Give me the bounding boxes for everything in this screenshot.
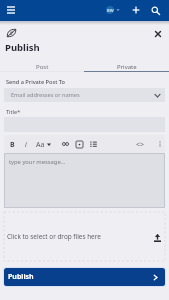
button[interactable]: Aa xyxy=(36,140,45,150)
button[interactable]: Menu xyxy=(5,4,17,16)
button[interactable]: Add xyxy=(130,4,142,16)
staticText: Publish xyxy=(8,272,34,282)
staticText: Private xyxy=(117,63,137,71)
button[interactable]: Publish xyxy=(4,268,165,286)
staticText: Send a Private Post To xyxy=(6,78,65,86)
button[interactable]: Insert image xyxy=(74,139,84,149)
button[interactable]: B xyxy=(10,140,15,150)
button[interactable]: <> xyxy=(136,140,145,150)
button[interactable]: Search xyxy=(149,4,161,16)
button[interactable]: Email addresses or names xyxy=(4,88,165,102)
button[interactable]: Account xyxy=(106,6,120,14)
button[interactable]: type your message... xyxy=(4,153,165,208)
staticText: Email addresses or names xyxy=(11,91,80,99)
button[interactable]: Close xyxy=(151,27,164,40)
button[interactable]: Upload files xyxy=(152,232,163,243)
button[interactable]: Insert link xyxy=(60,139,70,149)
button[interactable]: Private xyxy=(84,55,169,72)
staticText: Publish xyxy=(5,41,40,54)
button[interactable]: More options xyxy=(155,139,165,149)
button[interactable]: List xyxy=(88,139,98,149)
button[interactable]: Post xyxy=(0,55,84,72)
staticText: Post xyxy=(36,63,49,71)
staticText: Title* xyxy=(6,108,21,116)
button[interactable]: Click to select or drop files here xyxy=(4,212,165,261)
staticText: type your message... xyxy=(9,158,66,166)
staticText: BW xyxy=(107,8,114,13)
staticText: Click to select or drop files here xyxy=(7,232,101,241)
button[interactable]: i xyxy=(25,140,27,150)
